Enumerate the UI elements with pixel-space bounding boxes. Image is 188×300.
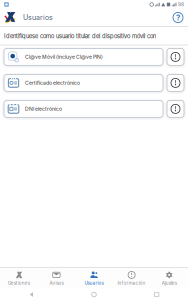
button[interactable]: Ajustes <box>150 268 188 288</box>
button[interactable]: Usuarios <box>75 268 113 288</box>
button[interactable]: Recents <box>125 289 188 300</box>
button[interactable]: Información <box>113 268 150 288</box>
staticText: Cl@ve Móvil (incluye Cl@ve PIN) <box>25 54 103 60</box>
staticText: Gestiones <box>8 280 30 286</box>
button[interactable]: Cl@ve Móvil (incluye Cl@ve PIN) <box>4 48 163 65</box>
button[interactable]: Más información sobre Cl@ve Móvil (inclu… <box>167 48 184 65</box>
button[interactable]: Certificado electrónico <box>4 74 163 91</box>
staticText: 98 <box>178 2 184 7</box>
button[interactable]: Home <box>63 289 125 300</box>
staticText: Certificado electrónico <box>25 80 80 86</box>
button[interactable]: Gestiones <box>0 268 38 288</box>
button[interactable]: Más información sobre Certificado electr… <box>167 74 184 91</box>
button[interactable]: Ayuda <box>172 11 184 23</box>
button[interactable]: Back <box>0 289 63 300</box>
staticText: Ajustes <box>162 280 177 286</box>
staticText: Usuarios <box>84 280 103 286</box>
staticText: Identifíquese como usuario titular del d… <box>4 33 156 40</box>
button[interactable]: Avisos <box>38 268 75 288</box>
staticText: Información <box>118 280 146 286</box>
staticText: ? <box>176 13 180 22</box>
staticText: Avisos <box>49 280 63 286</box>
staticText: DNI electrónico <box>25 106 62 112</box>
button[interactable]: Más información sobre DNI electrónico <box>167 100 184 117</box>
button[interactable]: DNI electrónico <box>4 100 163 117</box>
staticText: Usuarios <box>23 13 53 22</box>
